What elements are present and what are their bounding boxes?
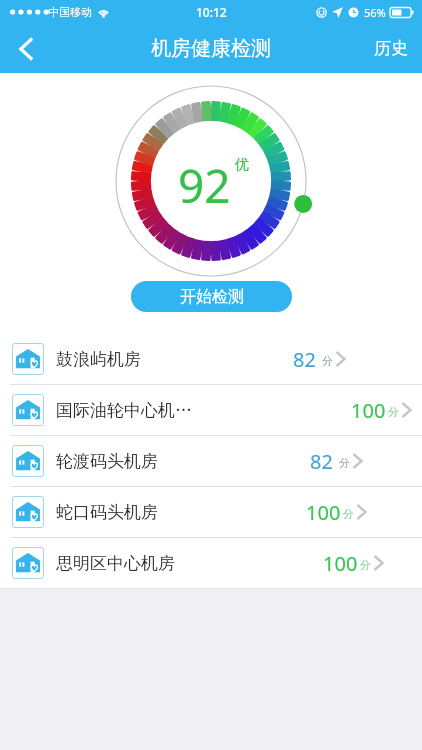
staticText: 思明区中心机房 [56,553,175,574]
button[interactable]: 返回 [0,24,52,73]
staticText: 100 [351,397,386,424]
staticText: 分 [343,507,354,521]
staticText: 100 [323,550,358,577]
staticText: 分 [322,354,333,368]
staticText: 中国移动 [48,5,92,19]
button[interactable]: 轮渡码头机房 [0,436,422,486]
button[interactable]: 开始检测 [131,281,292,312]
staticText: 100 [306,499,341,526]
staticText: 92 [178,154,231,217]
staticText: 鼓浪屿机房 [56,349,141,370]
staticText: 10:12 [196,4,227,20]
staticText: 82 [293,346,316,373]
staticText: 分 [388,405,399,419]
staticText: 开始检测 [180,287,244,307]
staticText: 机房健康检测 [151,36,271,61]
staticText: 分 [339,456,350,470]
button[interactable]: 思明区中心机房 [0,538,422,588]
staticText: 56% [364,5,386,20]
staticText: 轮渡码头机房 [56,451,158,472]
staticText: 分 [360,558,371,572]
staticText: 历史 [374,38,408,59]
staticText: 蛇口码头机房 [56,502,158,523]
button[interactable]: 国际油轮中心机房国际油轮国… [0,385,422,435]
button[interactable]: 蛇口码头机房 [0,487,422,537]
staticText: 82 [310,448,333,475]
button[interactable]: 鼓浪屿机房 [0,334,422,384]
staticText: 优 [235,156,249,174]
staticText: 国际油轮中心机房国际油轮国… [56,400,203,421]
button[interactable]: 历史 [360,24,422,73]
